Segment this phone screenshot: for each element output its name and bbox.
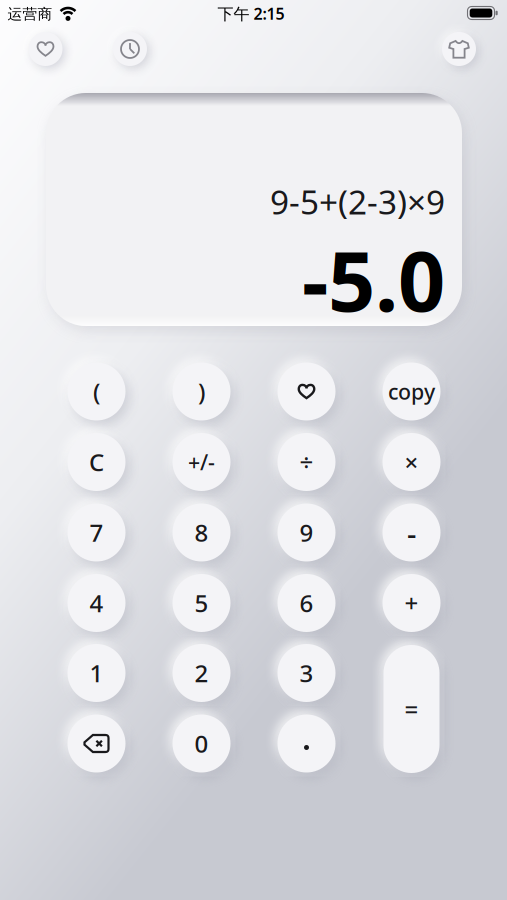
button[interactable]: C	[67, 433, 125, 491]
staticText: 4	[89, 587, 103, 619]
button[interactable]: .	[277, 714, 335, 772]
staticText: 3	[299, 657, 313, 689]
button[interactable]: 6	[277, 574, 335, 632]
staticText: 1	[89, 657, 103, 689]
button[interactable]: =	[383, 645, 439, 773]
staticText: ×	[404, 446, 418, 478]
staticText: )	[198, 376, 205, 407]
staticText: (	[93, 376, 100, 407]
staticText: 2	[194, 657, 208, 689]
button[interactable]: 0	[172, 714, 230, 772]
staticText: 9-5+(2-3)×9	[270, 179, 445, 224]
button[interactable]: 1	[67, 644, 125, 702]
button[interactable]: 9	[277, 503, 335, 561]
staticText: +/-	[188, 448, 215, 476]
staticText: ÷	[299, 446, 313, 478]
staticText: =	[404, 693, 418, 725]
staticText: 0	[194, 728, 208, 759]
button[interactable]: 5	[172, 574, 230, 632]
button[interactable]: )	[172, 362, 230, 420]
button[interactable]: 收藏	[277, 362, 335, 420]
staticText: 5	[194, 587, 208, 619]
button[interactable]: +	[382, 574, 440, 632]
button[interactable]: 3	[277, 644, 335, 702]
staticText: +	[404, 587, 418, 619]
staticText: -5.0	[302, 225, 445, 334]
button[interactable]: 4	[67, 574, 125, 632]
staticText: 8	[194, 517, 208, 548]
staticText: 7	[89, 517, 103, 548]
button[interactable]: 删除	[67, 714, 125, 772]
staticText: 6	[299, 587, 313, 619]
button[interactable]: 主题	[442, 32, 476, 66]
button[interactable]: ×	[382, 433, 440, 491]
button[interactable]: (	[67, 362, 125, 420]
button[interactable]: 8	[172, 503, 230, 561]
staticText: -	[407, 513, 416, 552]
staticText: copy	[388, 377, 435, 406]
staticText: 下午 2:15	[217, 3, 284, 24]
staticText: 9	[299, 517, 313, 548]
button[interactable]: copy	[382, 362, 440, 420]
button[interactable]: 2	[172, 644, 230, 702]
button[interactable]: ÷	[277, 433, 335, 491]
staticText: 运营商	[7, 5, 52, 23]
button[interactable]: 7	[67, 503, 125, 561]
button[interactable]: +/-	[172, 433, 230, 491]
button[interactable]: -	[382, 503, 440, 561]
button[interactable]: 收藏	[28, 32, 62, 66]
staticText: C	[89, 446, 104, 478]
button[interactable]: 历史记录	[113, 32, 147, 66]
